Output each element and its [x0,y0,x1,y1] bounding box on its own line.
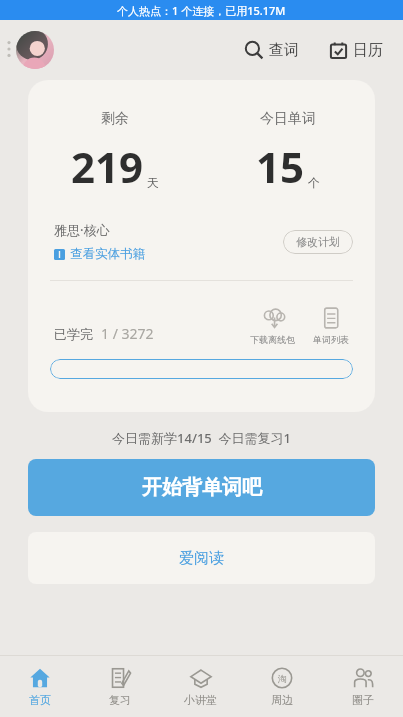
staticText: 雅思·核心 [54,221,110,239]
staticText: 天 [147,175,159,190]
button[interactable]: 修改计划 [283,230,353,254]
button[interactable]: 复习 [80,660,160,713]
button[interactable]: Profile [16,31,54,69]
staticText: 剩余 [101,110,129,128]
staticText: 单词列表 [313,334,349,345]
staticText: 今日单词 [260,110,316,128]
button[interactable]: 日历 [325,37,387,64]
staticText: 开始背单词吧 [142,475,262,500]
button[interactable]: 淘 [241,660,322,713]
staticText: 修改计划 [296,235,340,249]
staticText: 个 [308,175,320,190]
staticText: 个人热点：1 个连接，已用15.17M [117,3,286,18]
staticText: 219 [71,138,144,195]
staticText: 已学完 [54,326,93,342]
button[interactable]: Download offline pack [248,303,297,347]
button[interactable]: 小讲堂 [160,660,241,713]
staticText: 爱阅读 [179,549,224,568]
staticText: 日历 [353,41,383,60]
button[interactable]: 查看实体书籍 [54,246,145,262]
button[interactable]: 爱阅读 [28,532,375,584]
staticText: 首页 [29,693,51,707]
button[interactable]: 首页 [0,660,80,713]
staticText: 圈子 [352,693,374,707]
button[interactable]: 开始背单词吧 [28,459,375,516]
staticText: 查词 [269,41,299,60]
staticText: 查看实体书籍 [70,246,145,262]
button[interactable]: Word list [311,303,351,347]
staticText: 1 / 3272 [101,324,154,343]
staticText: 小讲堂 [184,693,217,707]
staticText: 15 [256,138,305,195]
staticText: 复习 [109,693,131,707]
staticText: 今日需新学14/15 今日需复习1 [0,429,403,447]
button[interactable]: 查词 [240,36,303,64]
staticText: 周边 [271,693,293,707]
staticText: 淘 [278,673,287,684]
staticText: 下载离线包 [250,334,295,345]
button[interactable]: 圈子 [322,660,403,713]
